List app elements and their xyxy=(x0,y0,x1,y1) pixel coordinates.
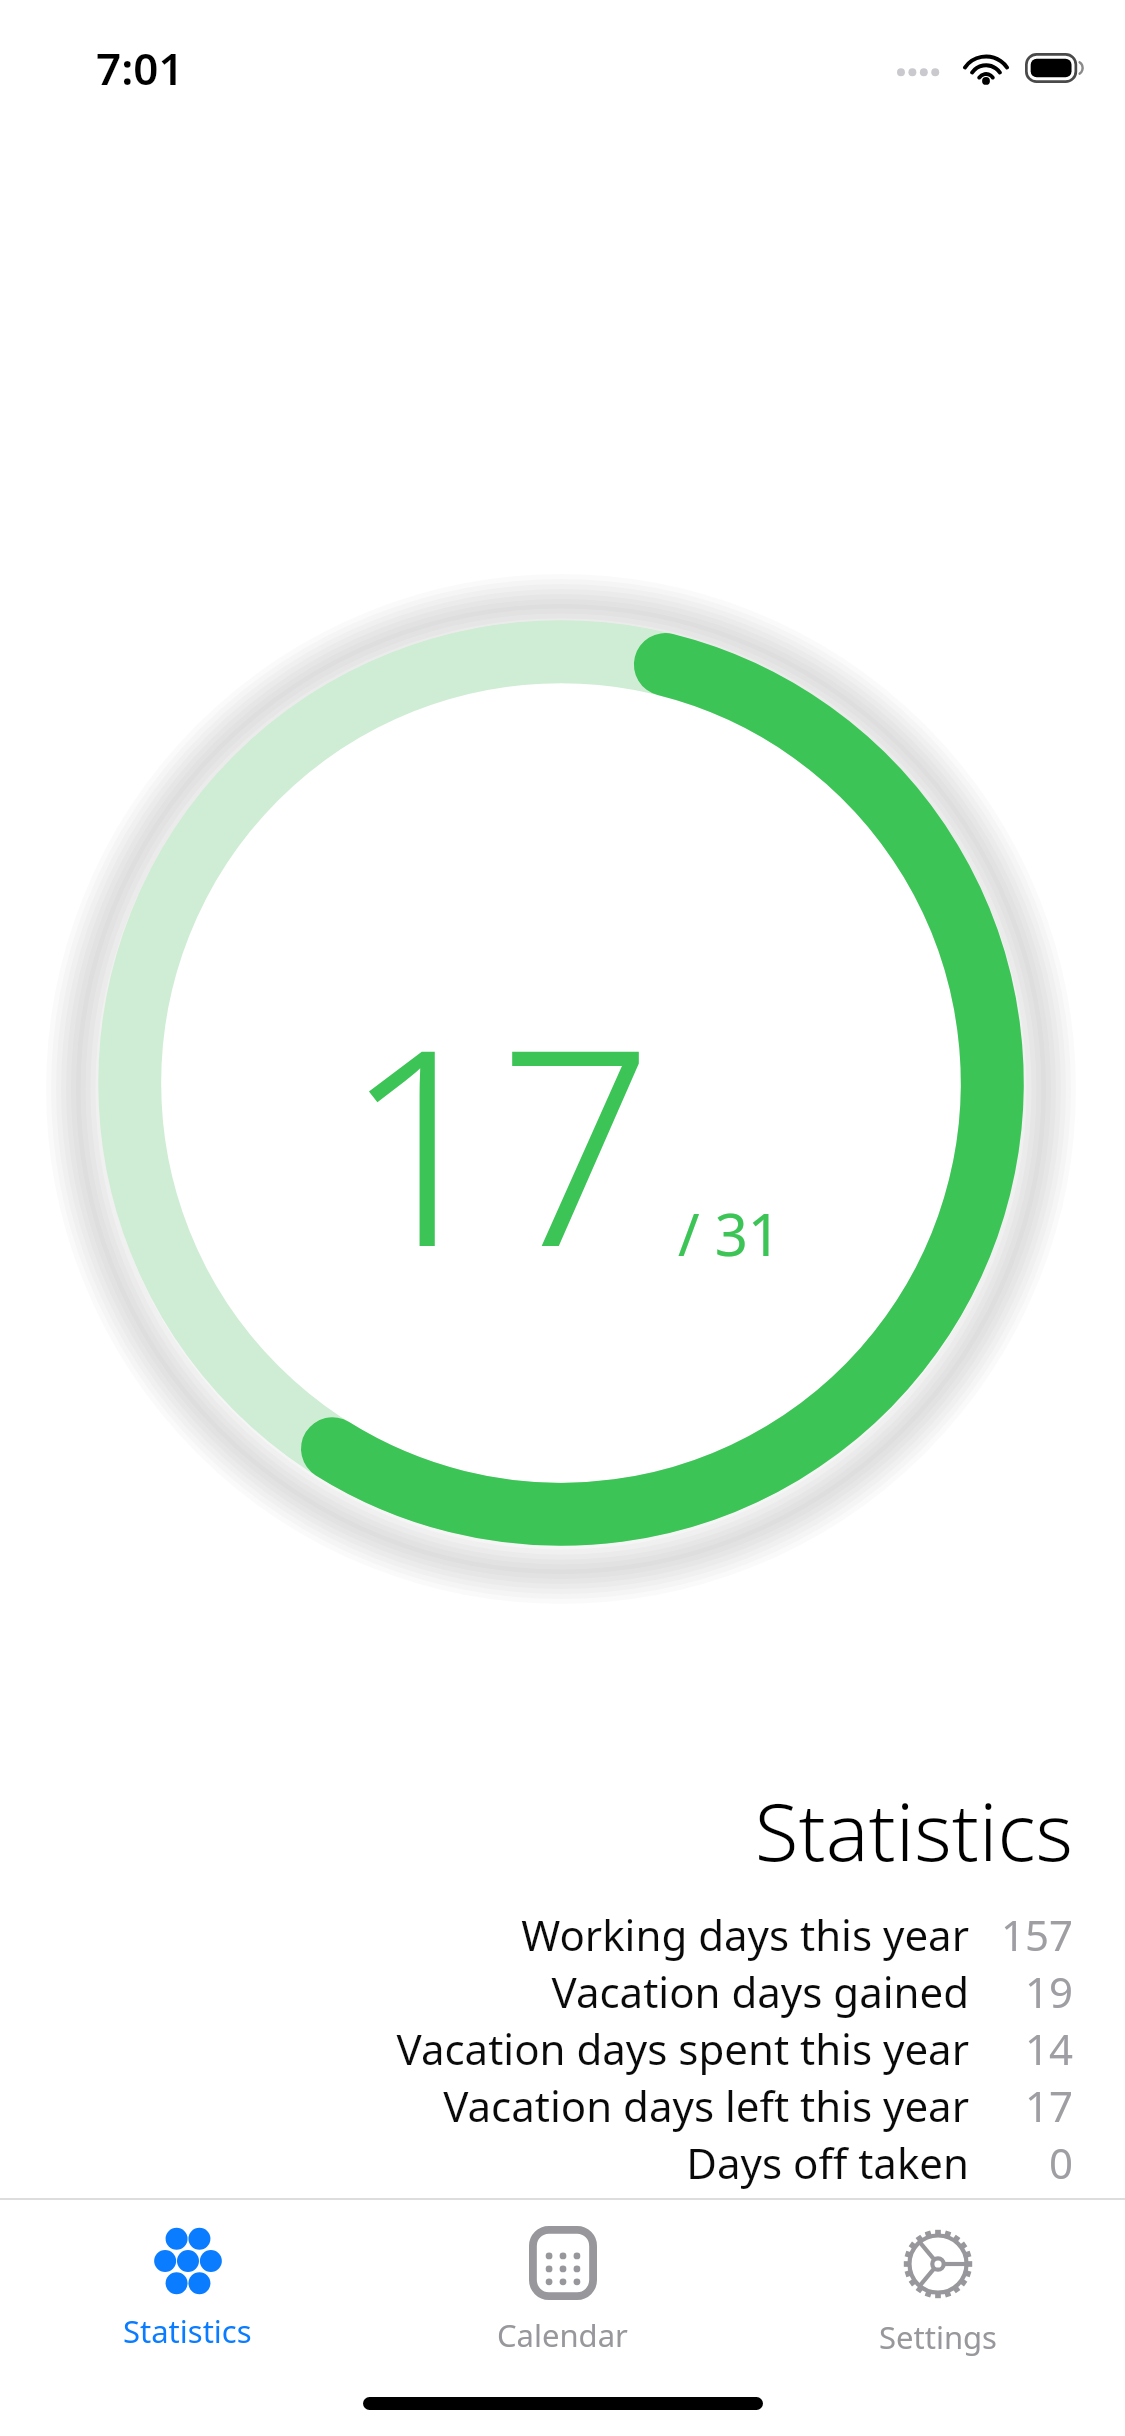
staticText: 17 xyxy=(343,955,654,1325)
button[interactable]: Days off taken xyxy=(686,2134,1073,2191)
staticText: Days off taken xyxy=(686,2134,969,2191)
staticText: Vacation days gained xyxy=(551,1963,969,2020)
staticText: 7:01 xyxy=(96,38,184,98)
staticText: / 31 xyxy=(678,1194,782,1273)
button[interactable]: Vacation days left this year xyxy=(443,2077,1073,2134)
button[interactable]: Statistics xyxy=(0,2200,375,2352)
staticText: Vacation days spent this year xyxy=(396,2020,969,2077)
other: Statistics xyxy=(151,2226,225,2296)
staticText: Statistics xyxy=(754,1775,1073,1884)
staticText: 0 xyxy=(1048,2134,1073,2191)
staticText: Calendar xyxy=(497,2314,628,2356)
staticText: Vacation days left this year xyxy=(443,2077,969,2134)
button[interactable]: Vacation days spent this year xyxy=(396,2020,1073,2077)
button[interactable]: Vacation days gained xyxy=(551,1963,1073,2020)
staticText: Working days this year xyxy=(521,1906,969,1963)
staticText: Settings xyxy=(879,2316,997,2358)
staticText: 19 xyxy=(1024,1963,1073,2020)
button[interactable]: Calendar xyxy=(375,2200,750,2356)
other: Calendar xyxy=(529,2226,597,2300)
staticText: 14 xyxy=(1024,2020,1073,2077)
button[interactable]: Working days this year xyxy=(521,1906,1073,1963)
button[interactable]: Settings xyxy=(750,2200,1125,2358)
staticText: 157 xyxy=(1000,1906,1073,1963)
staticText: 17 xyxy=(1024,2077,1073,2134)
staticText: Statistics xyxy=(123,2310,252,2352)
other: Settings xyxy=(900,2226,976,2302)
